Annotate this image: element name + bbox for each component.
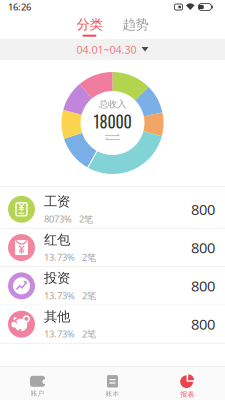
staticText: 800: [191, 238, 215, 257]
staticText: 16:26: [8, 1, 31, 13]
button[interactable]: 账户: [0, 375, 75, 397]
staticText: 2笔: [82, 251, 96, 263]
button[interactable]: 04.01~04.30: [0, 39, 225, 60]
button[interactable]: 切换收入/支出: [105, 134, 120, 141]
staticText: 账本: [105, 390, 119, 398]
staticText: 2笔: [82, 289, 96, 302]
staticText: 总收入: [99, 98, 126, 110]
staticText: 分类: [76, 16, 102, 33]
staticText: 2笔: [79, 213, 93, 225]
button[interactable]: 投资: [0, 267, 225, 305]
staticText: 趋势: [122, 16, 148, 33]
button[interactable]: 红包: [0, 229, 225, 267]
button[interactable]: 其他: [0, 305, 225, 344]
staticText: 工资: [44, 193, 70, 210]
staticText: 8073%: [44, 213, 72, 225]
staticText: 800: [191, 276, 215, 296]
staticText: 13.73%: [44, 251, 75, 263]
staticText: 18000: [93, 109, 131, 133]
staticText: 投资: [44, 270, 70, 286]
button[interactable]: 分类: [76, 16, 102, 37]
button[interactable]: 趋势: [122, 16, 148, 37]
staticText: 2笔: [82, 328, 96, 340]
staticText: 13.73%: [44, 328, 75, 340]
button[interactable]: 账本: [75, 375, 150, 398]
button[interactable]: 报表: [150, 374, 225, 398]
staticText: 账户: [30, 389, 44, 397]
staticText: 13.73%: [44, 289, 75, 302]
staticText: 04.01~04.30: [76, 42, 136, 57]
staticText: 800: [191, 314, 215, 334]
button[interactable]: 工资: [0, 190, 225, 229]
staticText: 800: [191, 199, 215, 219]
staticText: 红包: [44, 232, 70, 248]
staticText: 报表: [180, 390, 194, 398]
staticText: 其他: [44, 308, 70, 325]
